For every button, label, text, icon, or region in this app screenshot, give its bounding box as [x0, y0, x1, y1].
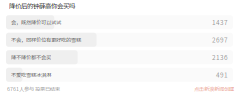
staticText: 降价后的钟薛高你会买吗 [9, 1, 75, 10]
button[interactable]: 会，既然降价可以试试 [6, 15, 233, 29]
button[interactable]: 不会，同样价位有更好吃的雪糕 [6, 33, 233, 47]
button[interactable]: 点击新浪新闻创建 [194, 85, 234, 92]
staticText: 6761人参与 投票已结束 [7, 85, 60, 92]
staticText: 点击新浪新闻创建 [194, 85, 234, 92]
staticText: 不爱吃雪糕冰淇淋 [11, 71, 51, 79]
staticText: 降不降价都不会买 [11, 53, 51, 61]
staticText: 491 [216, 70, 228, 79]
staticText: 会，既然降价可以试试 [11, 18, 61, 26]
staticText: 1437 [212, 18, 228, 27]
button[interactable]: 降不降价都不会买 [6, 50, 233, 64]
staticText: 不会，同样价位有更好吃的雪糕 [11, 36, 81, 44]
staticText: 2136 [212, 53, 228, 62]
button[interactable]: 不爱吃雪糕冰淇淋 [6, 68, 233, 82]
staticText: 2697 [212, 35, 228, 44]
